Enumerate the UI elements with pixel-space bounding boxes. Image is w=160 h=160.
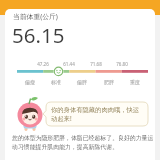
staticText: 当前体重(公斤) — [13, 12, 58, 21]
staticText: 重度 — [130, 79, 140, 85]
staticText: 偏胖 — [77, 79, 87, 85]
staticText: 47.26 — [35, 61, 51, 67]
staticText: 你的身体有隐藏的肉肉哦，快运动起来! — [51, 106, 143, 123]
staticText: 56.15 — [12, 21, 65, 49]
staticText: 偏瘦 — [25, 79, 35, 85]
staticText: 61.44 — [61, 61, 77, 67]
staticText: 76.80 — [114, 61, 130, 67]
staticText: 肥胖 — [104, 79, 114, 85]
staticText: 您的体型为隐形肥胖，体脂已经超标了。良好的力量运动习惯能提升肌肉能力，提高新陈代… — [12, 134, 155, 151]
staticText: 标准 — [51, 79, 61, 85]
staticText: 71.68 — [88, 61, 104, 67]
